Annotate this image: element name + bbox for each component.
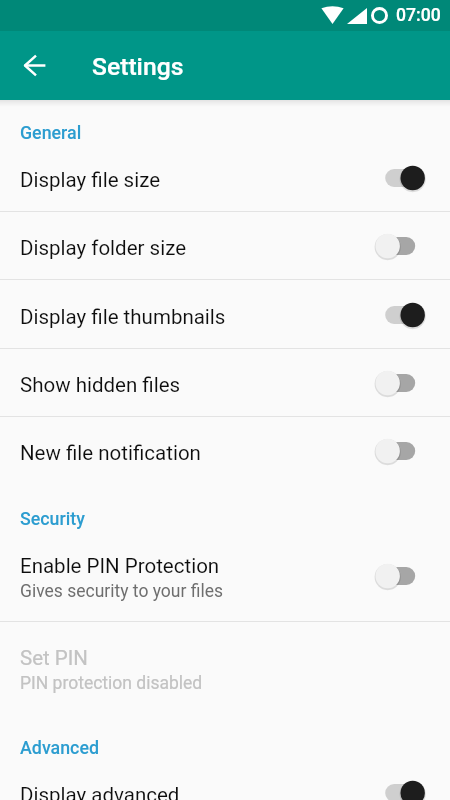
staticText: Gives security to your files — [20, 581, 224, 602]
staticText: 07:00 — [396, 5, 441, 26]
staticText: Security — [20, 508, 85, 529]
staticText: Set PIN — [20, 646, 88, 670]
staticText: Display file thumbnails — [20, 305, 226, 329]
staticText: Settings — [92, 52, 184, 81]
button[interactable]: Toggle off — [373, 366, 429, 400]
button[interactable]: Toggle on — [373, 776, 429, 800]
button[interactable]: Show hidden files — [0, 349, 450, 417]
button[interactable]: Toggle on — [373, 298, 429, 332]
staticText: New file notification — [20, 441, 201, 465]
button[interactable]: Display file size — [0, 144, 450, 212]
button[interactable]: New file notification — [0, 417, 450, 485]
button: Security — [0, 0, 450, 548]
staticText: General — [20, 122, 82, 143]
staticText: Show hidden files — [20, 373, 181, 397]
staticText: PIN protection disabled — [20, 673, 203, 694]
button[interactable]: Navigate back — [15, 45, 55, 85]
button[interactable]: Display advanced — [0, 759, 450, 800]
button[interactable]: Toggle on — [373, 161, 429, 195]
button[interactable]: Toggle off — [373, 559, 429, 593]
button: Advanced — [0, 0, 450, 777]
staticText: Advanced — [20, 737, 100, 758]
button[interactable]: Enable PIN Protection — [0, 530, 450, 622]
button[interactable]: Display folder size — [0, 212, 450, 280]
button[interactable]: Display file thumbnails — [0, 281, 450, 349]
staticText: Display folder size — [20, 236, 187, 260]
button[interactable]: Toggle off — [373, 229, 429, 263]
staticText: Display file size — [20, 168, 161, 192]
button[interactable]: Set PIN — [0, 622, 450, 714]
button: General — [0, 0, 450, 163]
staticText: Display advanced — [20, 783, 180, 800]
staticText: Enable PIN Protection — [20, 554, 220, 578]
button[interactable]: Toggle off — [373, 434, 429, 468]
